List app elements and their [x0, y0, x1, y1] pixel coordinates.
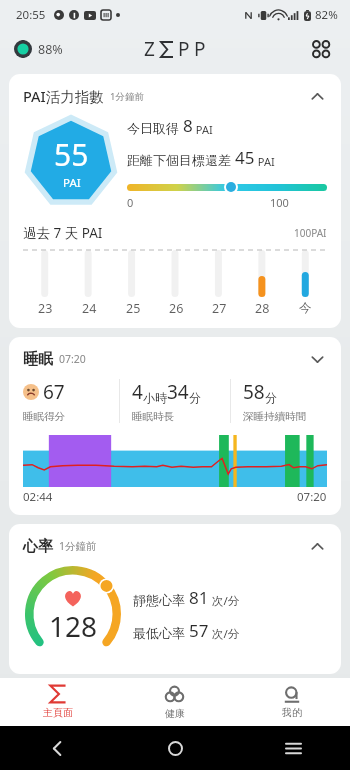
- staticText: PAI活力指數: [23, 86, 104, 106]
- staticText: Z: [144, 36, 159, 62]
- staticText: 20:55: [16, 7, 46, 23]
- staticText: 心率: [23, 537, 53, 556]
- staticText: 28: [255, 300, 270, 317]
- staticText: 次/分: [209, 593, 240, 609]
- staticText: 58: [243, 379, 265, 405]
- button[interactable]: More apps: [306, 34, 336, 64]
- staticText: 深睡持續時間: [243, 410, 306, 423]
- staticText: PAI: [255, 154, 275, 169]
- staticText: 小時: [143, 390, 167, 405]
- staticText: 128: [49, 607, 98, 645]
- button[interactable]: 健康: [116, 678, 233, 726]
- staticText: 分: [189, 390, 201, 405]
- button[interactable]: 88%: [14, 40, 63, 58]
- staticText: 100: [270, 195, 289, 210]
- staticText: 67: [43, 379, 65, 405]
- staticText: 距離下個目標還差: [127, 151, 235, 169]
- staticText: 07:20: [297, 489, 327, 505]
- staticText: 今: [299, 300, 312, 316]
- staticText: 34: [167, 379, 189, 405]
- staticText: 4: [132, 379, 143, 405]
- staticText: 26: [169, 300, 184, 317]
- staticText: 靜態心率: [133, 591, 189, 609]
- staticText: 睡眠: [23, 350, 53, 369]
- staticText: PAI: [193, 122, 213, 137]
- staticText: P: [178, 36, 194, 62]
- button[interactable]: Home: [158, 731, 192, 765]
- button[interactable]: 我的: [233, 678, 350, 726]
- staticText: 主頁面: [43, 706, 73, 719]
- button[interactable]: 睡眠: [9, 337, 341, 515]
- button[interactable]: PAI活力指數: [9, 74, 341, 328]
- staticText: 過去 7 天 PAI: [23, 224, 103, 242]
- button[interactable]: Collapse: [305, 534, 329, 558]
- staticText: 100PAI: [294, 226, 327, 240]
- staticText: 45: [235, 146, 255, 169]
- staticText: 次/分: [209, 626, 240, 642]
- button[interactable]: Expand: [305, 347, 329, 371]
- staticText: 睡眠得分: [23, 410, 65, 423]
- staticText: 今日取得: [127, 119, 183, 137]
- staticText: 最低心率: [133, 624, 189, 642]
- staticText: 81: [189, 586, 209, 609]
- button[interactable]: 心率: [9, 524, 341, 674]
- staticText: 88%: [38, 41, 63, 58]
- staticText: 分: [265, 390, 277, 405]
- button[interactable]: Back: [40, 731, 74, 765]
- staticText: PAI: [63, 175, 81, 191]
- button[interactable]: 主頁面: [0, 678, 116, 726]
- staticText: 55: [54, 134, 89, 175]
- staticText: 1分鐘前: [59, 539, 97, 553]
- button[interactable]: Recents: [276, 731, 310, 765]
- staticText: 健康: [165, 707, 185, 720]
- staticText: 1分鐘前: [110, 90, 144, 103]
- staticText: 02:44: [23, 489, 53, 505]
- staticText: 25: [126, 300, 141, 317]
- staticText: 0: [127, 195, 134, 210]
- staticText: 我的: [282, 706, 302, 719]
- staticText: 82%: [315, 7, 338, 23]
- staticText: P: [194, 36, 206, 62]
- staticText: 24: [82, 300, 97, 317]
- button[interactable]: Collapse: [305, 84, 329, 108]
- staticText: 睡眠時長: [132, 410, 174, 423]
- staticText: 8: [183, 114, 193, 137]
- staticText: 07:20: [59, 352, 86, 366]
- staticText: 23: [38, 300, 53, 317]
- staticText: 57: [189, 619, 209, 642]
- staticText: 27: [212, 300, 227, 317]
